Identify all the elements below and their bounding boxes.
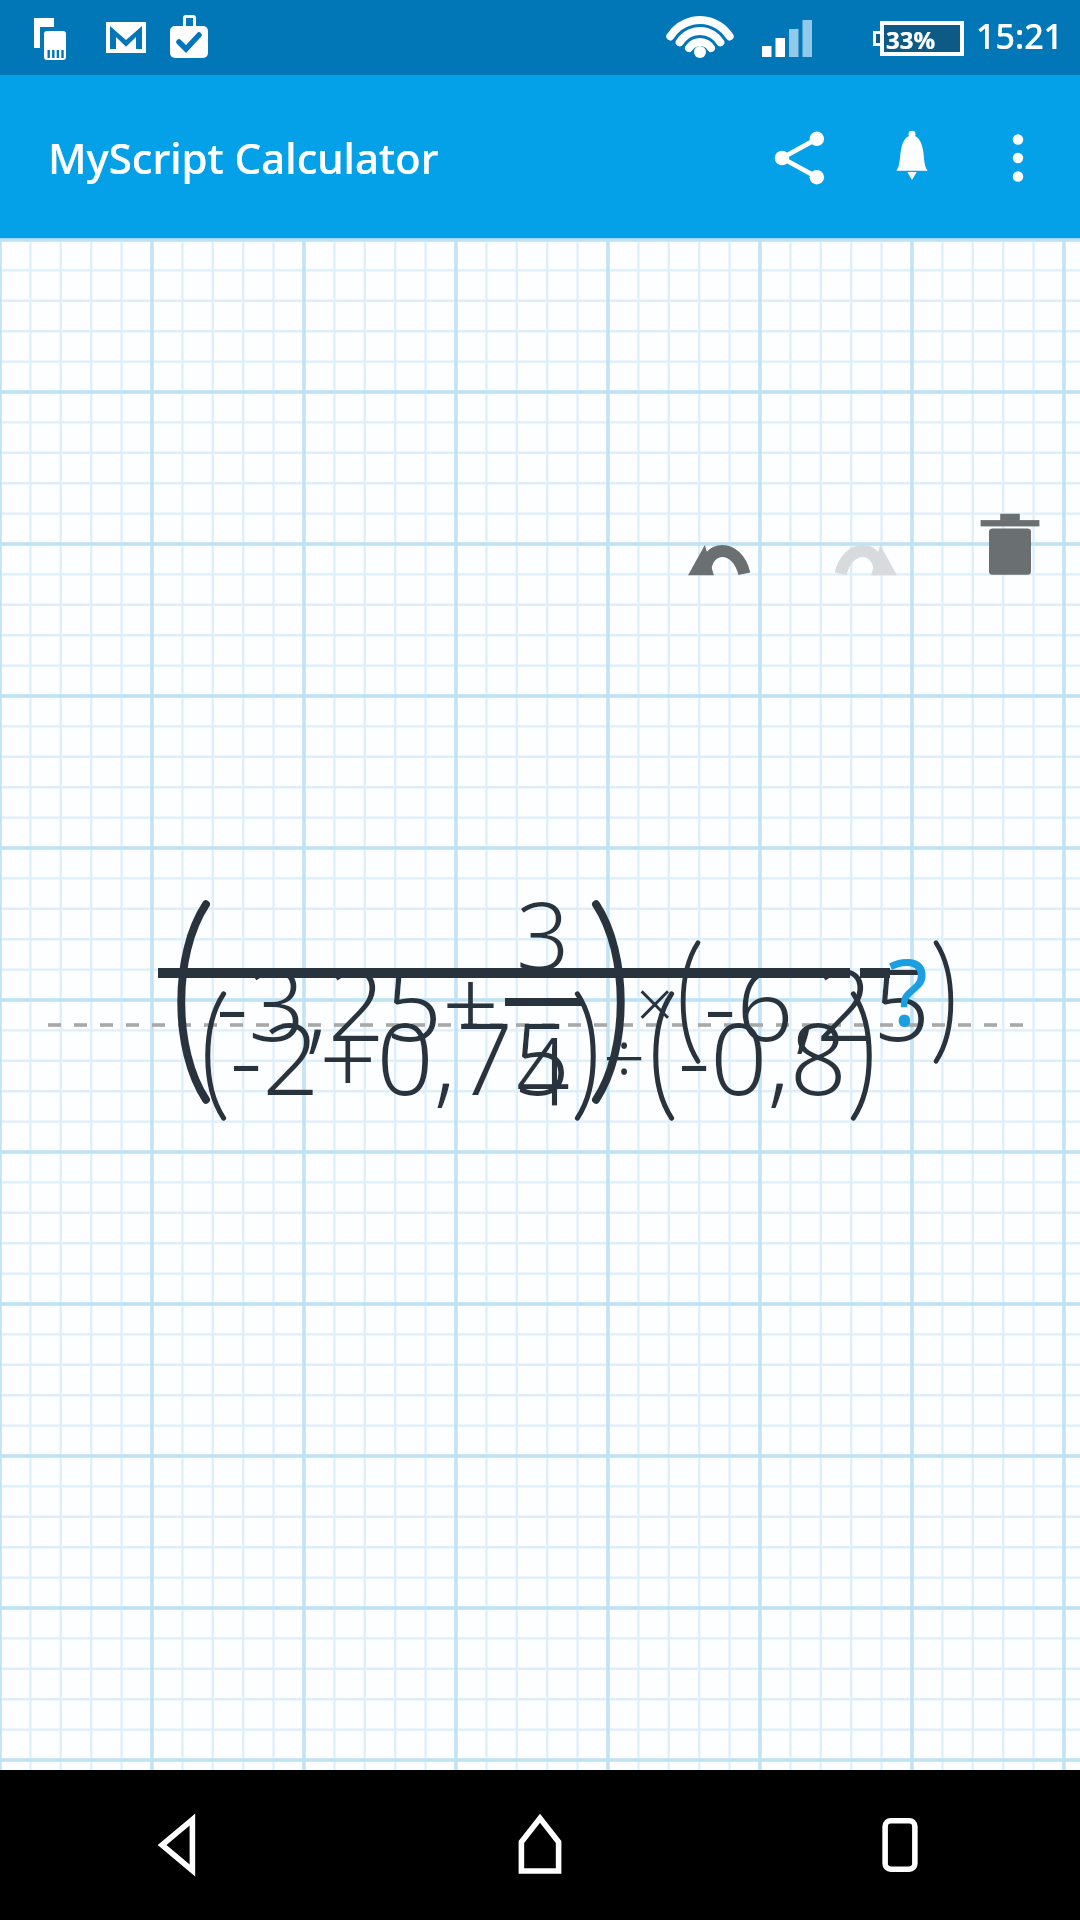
staticText: 3 [516, 870, 570, 998]
button[interactable]: Notifications [856, 102, 968, 214]
staticText: MyScript Calculator [48, 129, 439, 186]
staticText: ÷ [603, 1006, 646, 1107]
button[interactable]: Share [744, 102, 856, 214]
staticText: -6,25 [704, 934, 930, 1070]
button[interactable]: Home [360, 1770, 720, 1920]
staticText: -3,25+ [216, 934, 500, 1070]
button[interactable]: Back [0, 1770, 360, 1920]
button[interactable]: Clear all [948, 484, 1072, 608]
staticText: 4 [516, 1006, 570, 1134]
staticText: ? [888, 928, 928, 1053]
button[interactable]: Redo [803, 492, 927, 616]
staticText: -0,8 [678, 988, 847, 1124]
staticText: × [636, 957, 674, 1047]
button[interactable]: Recent apps [720, 1770, 1080, 1920]
button[interactable]: Undo [658, 492, 782, 616]
staticText: 15:21 [976, 13, 1064, 59]
staticText: -2+0,75 [230, 988, 571, 1124]
staticText: 33% [886, 23, 936, 56]
button[interactable]: More options [968, 108, 1068, 208]
